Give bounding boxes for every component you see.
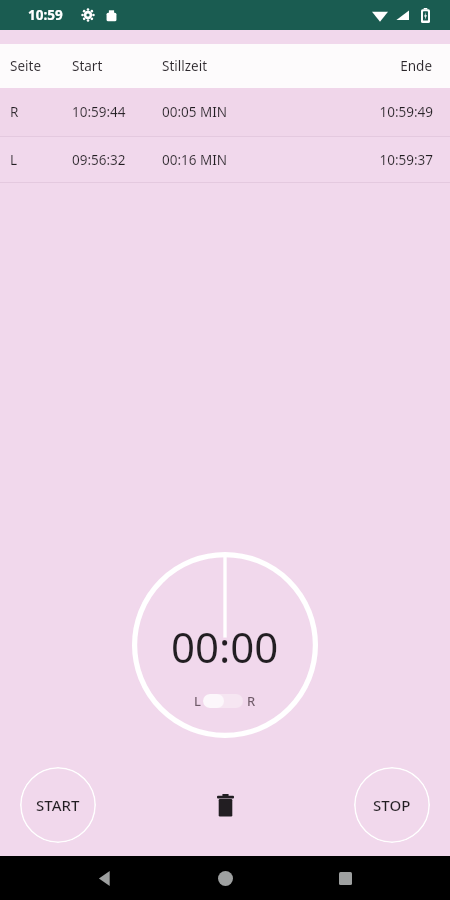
button[interactable]: Home <box>208 861 242 895</box>
staticText: 00:05 MIN <box>162 103 312 121</box>
button[interactable]: STOP <box>354 767 430 843</box>
button[interactable]: L <box>194 692 256 710</box>
staticText: 10:59:49 <box>312 103 433 121</box>
staticText: Ende <box>312 57 432 75</box>
button[interactable]: L <box>0 137 450 182</box>
button[interactable]: Recent apps <box>328 861 362 895</box>
staticText: 10:59 <box>28 6 63 24</box>
staticText: L <box>194 692 201 710</box>
staticText: STOP <box>373 795 411 815</box>
staticText: Stillzeit <box>162 57 312 75</box>
staticText: 10:59:44 <box>72 103 162 121</box>
staticText: 09:56:32 <box>72 151 162 169</box>
staticText: Seite <box>10 57 72 75</box>
staticText: START <box>36 795 80 815</box>
staticText: R <box>247 692 256 710</box>
staticText: 10:59:37 <box>312 151 433 169</box>
staticText: L <box>10 151 72 169</box>
staticText: R <box>10 103 72 121</box>
button[interactable]: START <box>20 767 96 843</box>
staticText: 00:16 MIN <box>162 151 312 169</box>
button[interactable]: Delete <box>201 781 249 829</box>
button[interactable]: Back <box>88 861 122 895</box>
staticText: 00:00 <box>171 618 279 675</box>
staticText: Start <box>72 57 162 75</box>
button[interactable]: R <box>0 88 450 136</box>
